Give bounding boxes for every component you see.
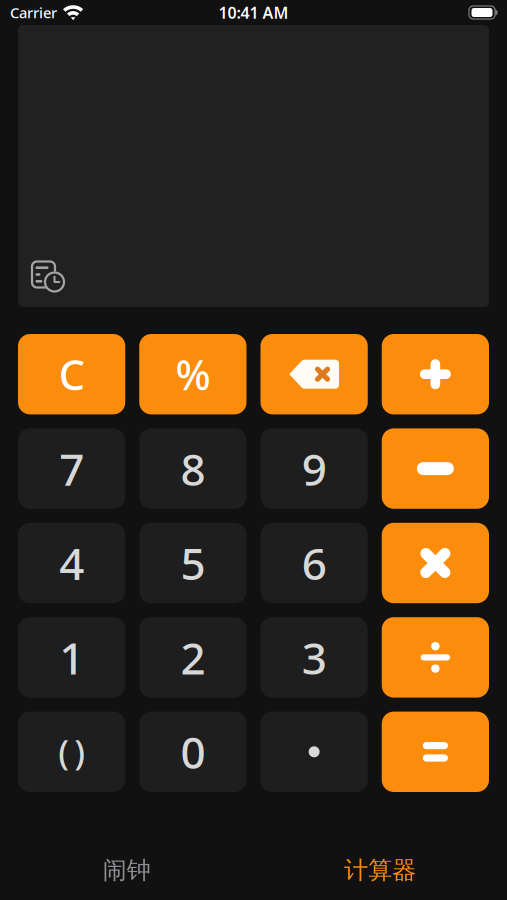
staticText: 6	[302, 534, 327, 592]
button[interactable]: 计算器	[253, 800, 507, 900]
staticText: 2	[180, 628, 205, 687]
button[interactable]: 2	[139, 617, 246, 698]
button[interactable]: Decimal point	[260, 712, 368, 792]
button[interactable]: 4	[18, 523, 125, 603]
button[interactable]: 闹钟	[0, 800, 253, 900]
staticText: )	[74, 729, 85, 775]
button[interactable]: 5	[139, 523, 246, 603]
button[interactable]: Equals	[382, 712, 489, 792]
button[interactable]: 7	[18, 428, 125, 509]
button[interactable]: Divide	[382, 617, 489, 698]
button[interactable]: Delete	[260, 334, 368, 414]
button[interactable]: %	[139, 334, 246, 414]
staticText: 8	[180, 439, 205, 498]
button[interactable]: Minus	[382, 428, 489, 509]
staticText: 1	[59, 628, 84, 687]
button[interactable]: Plus	[382, 334, 489, 414]
staticText: 闹钟	[103, 855, 151, 885]
staticText: %	[175, 347, 210, 402]
button[interactable]: 9	[260, 428, 368, 509]
button[interactable]: 0	[139, 712, 246, 792]
button[interactable]: 6	[260, 523, 368, 603]
staticText: 5	[180, 534, 205, 592]
button[interactable]: Parentheses	[18, 712, 125, 792]
button[interactable]: Multiply	[382, 523, 489, 603]
button[interactable]: History	[26, 255, 70, 299]
staticText: Carrier	[10, 3, 57, 22]
staticText: 7	[59, 439, 84, 498]
button[interactable]: 1	[18, 617, 125, 698]
button[interactable]: 3	[260, 617, 368, 698]
staticText: 4	[59, 534, 84, 592]
staticText: 9	[302, 439, 327, 498]
staticText: 0	[180, 723, 205, 781]
staticText: 10:41 AM	[218, 2, 288, 23]
staticText: C	[59, 347, 85, 402]
staticText: 计算器	[344, 855, 416, 885]
button[interactable]: C	[18, 334, 125, 414]
staticText: 3	[302, 628, 327, 687]
staticText: (	[58, 729, 69, 775]
button[interactable]: 8	[139, 428, 246, 509]
